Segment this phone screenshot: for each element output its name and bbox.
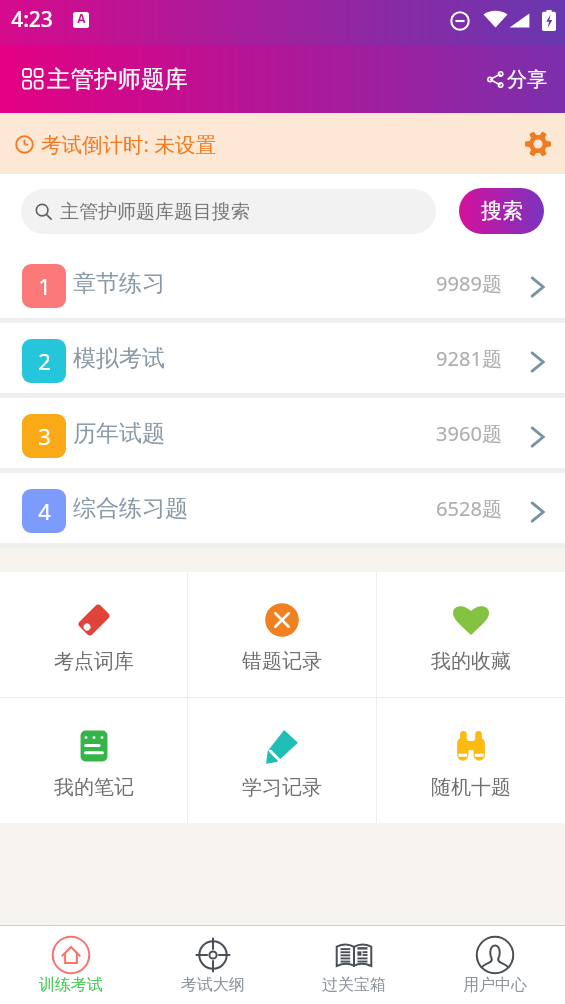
staticText: 9989题 xyxy=(436,270,502,297)
button[interactable]: 设置 xyxy=(525,131,551,157)
button[interactable]: 1 xyxy=(0,248,565,318)
staticText: A xyxy=(77,12,86,26)
staticText: 章节练习 xyxy=(73,269,165,298)
staticText: 错题记录 xyxy=(242,649,322,674)
staticText: 随机十题 xyxy=(431,775,511,800)
button[interactable]: 训练考试 xyxy=(0,926,142,1004)
staticText: 2 xyxy=(38,346,51,376)
button[interactable]: 我的收藏 xyxy=(377,572,565,697)
staticText: 过关宝箱 xyxy=(322,975,386,995)
staticText: 历年试题 xyxy=(73,419,165,448)
staticText: 主管护师题库 xyxy=(47,64,188,94)
button[interactable]: 2 xyxy=(0,323,565,393)
button[interactable]: 3 xyxy=(0,398,565,468)
staticText: 我的笔记 xyxy=(54,775,134,800)
staticText: 分享 xyxy=(507,67,547,92)
button[interactable]: 考试大纲 xyxy=(142,926,283,1004)
button[interactable]: 4 xyxy=(0,473,565,543)
button[interactable]: 错题记录 xyxy=(188,572,376,697)
staticText: 综合练习题 xyxy=(73,494,188,523)
staticText: 训练考试 xyxy=(39,975,103,995)
button[interactable]: 学习记录 xyxy=(188,698,376,823)
button[interactable]: 用户中心 xyxy=(424,926,565,1004)
staticText: 4 xyxy=(38,496,51,526)
staticText: 9281题 xyxy=(436,345,502,372)
staticText: 1 xyxy=(38,271,51,301)
button[interactable]: 过关宝箱 xyxy=(283,926,424,1004)
button[interactable]: 搜索 xyxy=(459,188,544,234)
button[interactable]: 随机十题 xyxy=(377,698,565,823)
staticText: 我的收藏 xyxy=(431,649,511,674)
staticText: 主管护师题库题目搜索 xyxy=(60,200,250,224)
button[interactable]: 考点词库 xyxy=(0,572,187,697)
staticText: 6528题 xyxy=(436,495,502,522)
staticText: 考点词库 xyxy=(54,649,134,674)
staticText: 搜索 xyxy=(481,198,523,224)
staticText: 4:23 xyxy=(11,5,53,34)
staticText: 模拟考试 xyxy=(73,344,165,373)
staticText: 用户中心 xyxy=(463,975,527,995)
button[interactable]: 我的笔记 xyxy=(0,698,187,823)
staticText: 考试大纲 xyxy=(181,975,245,995)
button[interactable]: 主管护师题库题目搜索 xyxy=(21,189,436,234)
staticText: 考试倒计时: 未设置 xyxy=(41,130,216,158)
staticText: 3 xyxy=(38,421,51,451)
staticText: 3960题 xyxy=(436,420,502,447)
button[interactable]: 分享 xyxy=(483,63,551,96)
staticText: 学习记录 xyxy=(242,775,322,800)
